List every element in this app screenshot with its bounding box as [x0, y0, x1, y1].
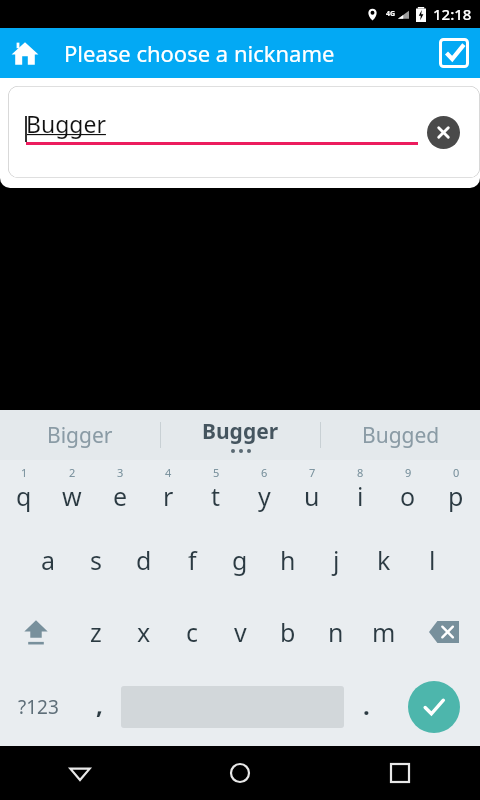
button[interactable]: Clear text: [427, 116, 460, 149]
staticText: 7: [309, 465, 316, 480]
staticText: g: [232, 543, 248, 577]
button[interactable]: h: [264, 524, 312, 596]
staticText: .: [363, 689, 370, 722]
button[interactable]: c: [168, 596, 216, 668]
button[interactable]: v: [216, 596, 264, 668]
staticText: 4: [165, 465, 172, 480]
staticText: 6: [261, 465, 268, 480]
staticText: v: [234, 615, 247, 649]
staticText: 4G: [386, 9, 396, 19]
button[interactable]: ,: [77, 668, 121, 746]
staticText: Please choose a nickname: [64, 38, 428, 68]
staticText: a: [41, 543, 56, 577]
button[interactable]: b: [264, 596, 312, 668]
staticText: Bigger: [47, 421, 113, 450]
button[interactable]: 2: [48, 462, 96, 524]
button[interactable]: 4: [144, 462, 192, 524]
button[interactable]: 0: [432, 462, 480, 524]
staticText: u: [304, 479, 320, 513]
button[interactable]: Bugger: [202, 410, 279, 460]
button[interactable]: Recent apps: [320, 746, 480, 800]
button[interactable]: Bigger: [0, 410, 160, 460]
button[interactable]: z: [72, 596, 120, 668]
staticText: r: [163, 479, 174, 513]
staticText: d: [136, 543, 152, 577]
button[interactable]: l: [408, 524, 456, 596]
staticText: 12:18: [433, 4, 472, 24]
button[interactable]: Back: [0, 746, 160, 800]
staticText: Bugger: [26, 108, 106, 139]
staticText: t: [211, 479, 221, 513]
staticText: o: [400, 479, 416, 513]
button[interactable]: 6: [240, 462, 288, 524]
button[interactable]: s: [72, 524, 120, 596]
button[interactable]: 7: [288, 462, 336, 524]
staticText: i: [357, 479, 364, 513]
staticText: 9: [405, 465, 412, 480]
button[interactable]: Home: [0, 28, 50, 78]
button[interactable]: j: [312, 524, 360, 596]
button[interactable]: ?123: [0, 668, 77, 746]
staticText: q: [16, 479, 32, 513]
staticText: 2: [69, 465, 76, 480]
button[interactable]: x: [120, 596, 168, 668]
staticText: k: [377, 543, 391, 577]
button[interactable]: Bugged: [321, 410, 480, 460]
button[interactable]: d: [120, 524, 168, 596]
staticText: ?123: [18, 694, 59, 720]
button[interactable]: f: [168, 524, 216, 596]
button[interactable]: 5: [192, 462, 240, 524]
button[interactable]: Enter: [408, 681, 460, 733]
button[interactable]: Home: [160, 746, 320, 800]
button[interactable]: 8: [336, 462, 384, 524]
staticText: l: [429, 543, 436, 577]
staticText: b: [280, 615, 296, 649]
staticText: z: [90, 615, 102, 649]
button[interactable]: m: [360, 596, 408, 668]
staticText: 5: [213, 465, 220, 480]
staticText: j: [333, 543, 340, 577]
button[interactable]: Confirm: [428, 28, 480, 78]
staticText: Bugged: [362, 421, 440, 450]
staticText: Bugger: [202, 417, 279, 446]
staticText: e: [113, 479, 128, 513]
staticText: x: [137, 615, 151, 649]
button[interactable]: Bugger: [8, 86, 480, 178]
button[interactable]: 1: [0, 462, 48, 524]
button[interactable]: 9: [384, 462, 432, 524]
staticText: 8: [357, 465, 364, 480]
staticText: m: [372, 615, 396, 649]
staticText: s: [90, 543, 102, 577]
button[interactable]: Shift: [0, 596, 72, 668]
staticText: 3: [117, 465, 124, 480]
button[interactable]: g: [216, 524, 264, 596]
staticText: 0: [453, 465, 460, 480]
staticText: ,: [96, 688, 103, 721]
staticText: n: [328, 615, 344, 649]
button[interactable]: n: [312, 596, 360, 668]
button[interactable]: a: [24, 524, 72, 596]
staticText: y: [258, 479, 271, 513]
button[interactable]: Backspace: [408, 596, 480, 668]
staticText: c: [186, 615, 199, 649]
staticText: 1: [21, 465, 28, 480]
button[interactable]: .: [344, 668, 388, 746]
staticText: h: [280, 543, 296, 577]
staticText: f: [188, 543, 197, 577]
button[interactable]: 3: [96, 462, 144, 524]
staticText: w: [62, 479, 82, 513]
staticText: p: [448, 479, 464, 513]
button[interactable]: k: [360, 524, 408, 596]
